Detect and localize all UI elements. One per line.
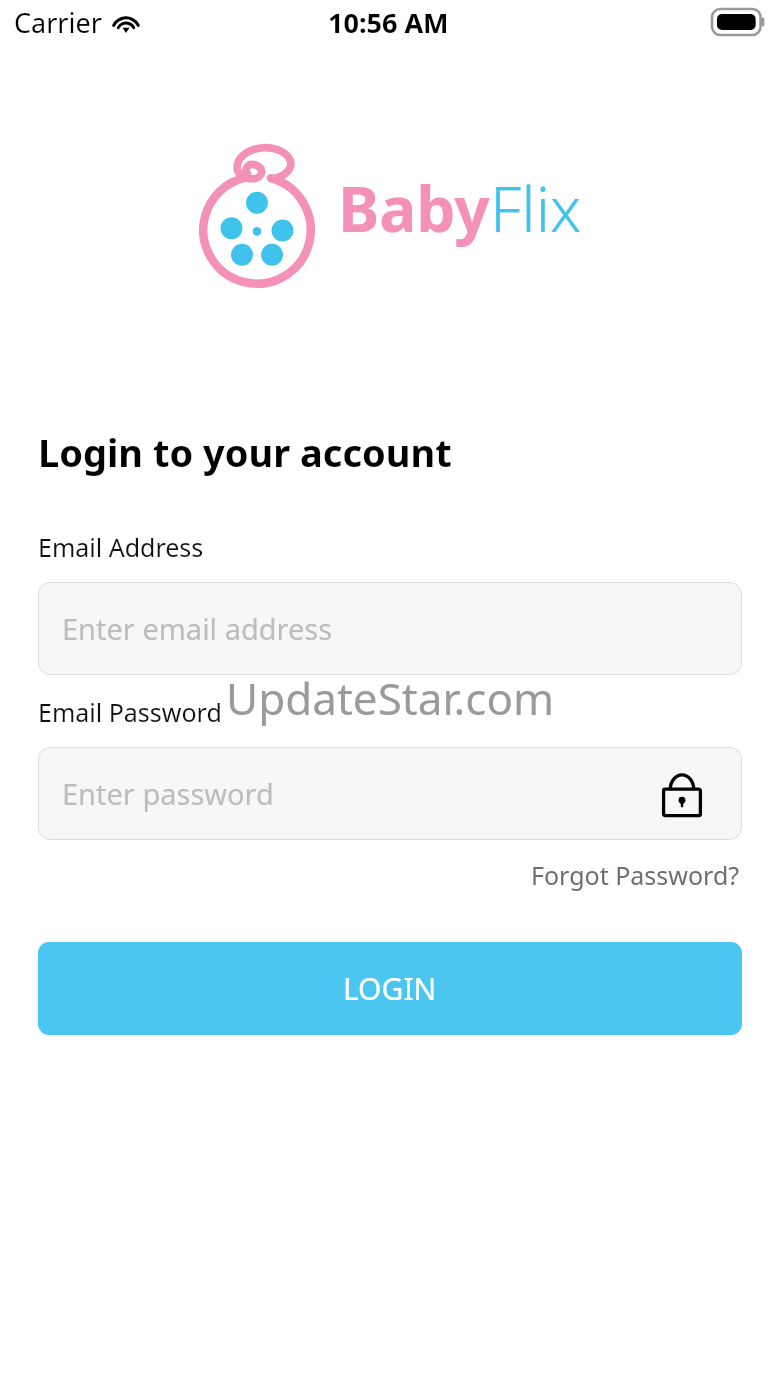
staticText: Email Password (38, 695, 222, 729)
staticText: Login to your account (38, 426, 452, 478)
staticText: Flix (490, 166, 582, 250)
button[interactable]: Enter email address (38, 582, 742, 675)
staticText: Enter password (62, 774, 274, 813)
staticText: Email Address (38, 530, 204, 564)
staticText: Carrier (14, 4, 102, 41)
staticText: UpdateStar.com (226, 668, 555, 728)
staticText: Enter email address (62, 609, 333, 648)
button[interactable]: Enter password (38, 747, 742, 840)
staticText: Baby (338, 166, 490, 250)
staticText: 10:56 AM (328, 4, 449, 41)
button[interactable]: Forgot Password? (529, 854, 742, 896)
staticText: Forgot Password? (531, 858, 740, 892)
button[interactable]: LOGIN (38, 942, 742, 1035)
staticText: LOGIN (343, 968, 437, 1009)
button[interactable]: Toggle password visibility (658, 770, 706, 818)
